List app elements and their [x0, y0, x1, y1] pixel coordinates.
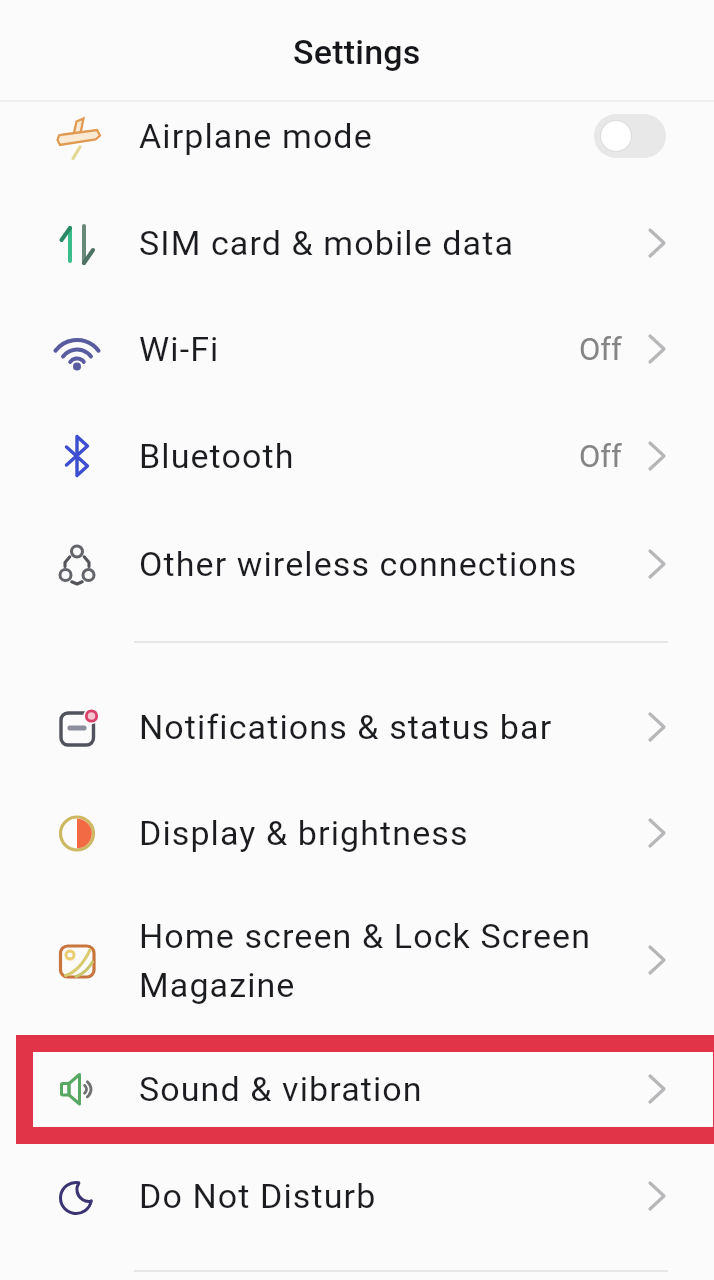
staticText: Wi-Fi	[139, 329, 579, 369]
staticText: SIM card & mobile data	[139, 223, 646, 263]
staticText: Off	[579, 438, 622, 474]
button[interactable]	[594, 114, 666, 158]
staticText: Bluetooth	[139, 436, 579, 476]
staticText: Notifications & status bar	[139, 707, 646, 747]
staticText: Display & brightness	[139, 813, 646, 853]
staticText: Sound & vibration	[139, 1069, 646, 1109]
staticText: Off	[579, 331, 622, 367]
staticText: Airplane mode	[139, 116, 594, 156]
button[interactable]: Wi-Fi	[0, 295, 714, 402]
staticText: Do Not Disturb	[139, 1176, 646, 1216]
button[interactable]: Other wireless connections	[0, 510, 714, 617]
staticText: Home screen & Lock Screen Magazine	[139, 916, 646, 1005]
staticText: Settings	[293, 32, 421, 72]
button[interactable]: Sound & vibration	[0, 1035, 714, 1142]
button[interactable]: Display & brightness	[0, 779, 714, 886]
button[interactable]: Bluetooth	[0, 402, 714, 509]
button[interactable]: Airplane mode	[0, 82, 714, 189]
button[interactable]: Home screen & Lock Screen Magazine	[0, 885, 714, 1035]
button[interactable]: Notifications & status bar	[0, 673, 714, 780]
staticText: Other wireless connections	[139, 544, 646, 584]
button[interactable]: Do Not Disturb	[0, 1142, 714, 1249]
button[interactable]: SIM card & mobile data	[0, 189, 714, 296]
